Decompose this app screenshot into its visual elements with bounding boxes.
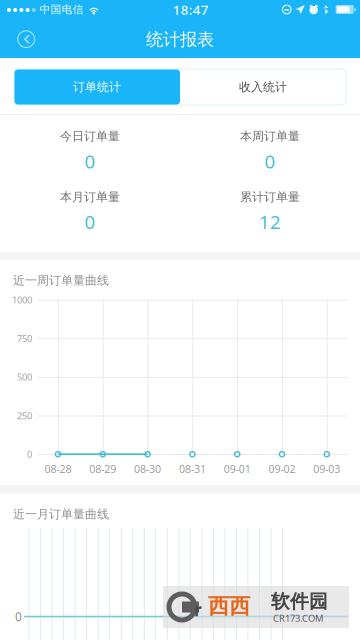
staticText: 08-30 [134,462,161,476]
staticText: 累计订单量 [240,189,300,204]
staticText: 0 [27,448,32,460]
staticText: 0 [264,149,275,173]
button[interactable]: 订单统计 [14,69,180,105]
staticText: 本月订单量 [60,189,120,204]
staticText: 08-29 [89,462,116,476]
staticText: 12 [259,209,281,234]
staticText: r [194,598,202,621]
staticText: 今日订单量 [60,129,120,144]
staticText: 09-03 [313,462,340,476]
button[interactable]: 收入统计 [180,69,346,105]
staticText: 软件园 [271,590,328,613]
staticText: 西西 [208,593,250,619]
staticText: 订单统计 [73,80,121,94]
staticText: 近一月订单量曲线 [13,507,109,521]
staticText: 本周订单量 [240,129,300,144]
staticText: 09-02 [268,462,295,476]
staticText: 18:47 [173,1,209,18]
staticText: 500 [17,371,32,383]
staticText: 09-01 [224,462,251,476]
button[interactable]: Back [0,20,44,58]
staticText: 08-31 [179,462,206,476]
staticText: 0 [84,209,95,234]
staticText: 750 [17,332,32,345]
staticText: 08-28 [44,462,71,476]
staticText: 0 [15,609,22,624]
staticText: CR173.COM [273,612,323,624]
staticText: 0 [84,149,95,173]
staticText: 250 [17,409,32,422]
staticText: 中国电信 [40,3,84,16]
staticText: 统计报表 [146,29,214,50]
staticText: 收入统计 [239,80,287,94]
staticText: 近一周订单量曲线 [13,273,109,288]
staticText: 1000 [12,294,32,306]
